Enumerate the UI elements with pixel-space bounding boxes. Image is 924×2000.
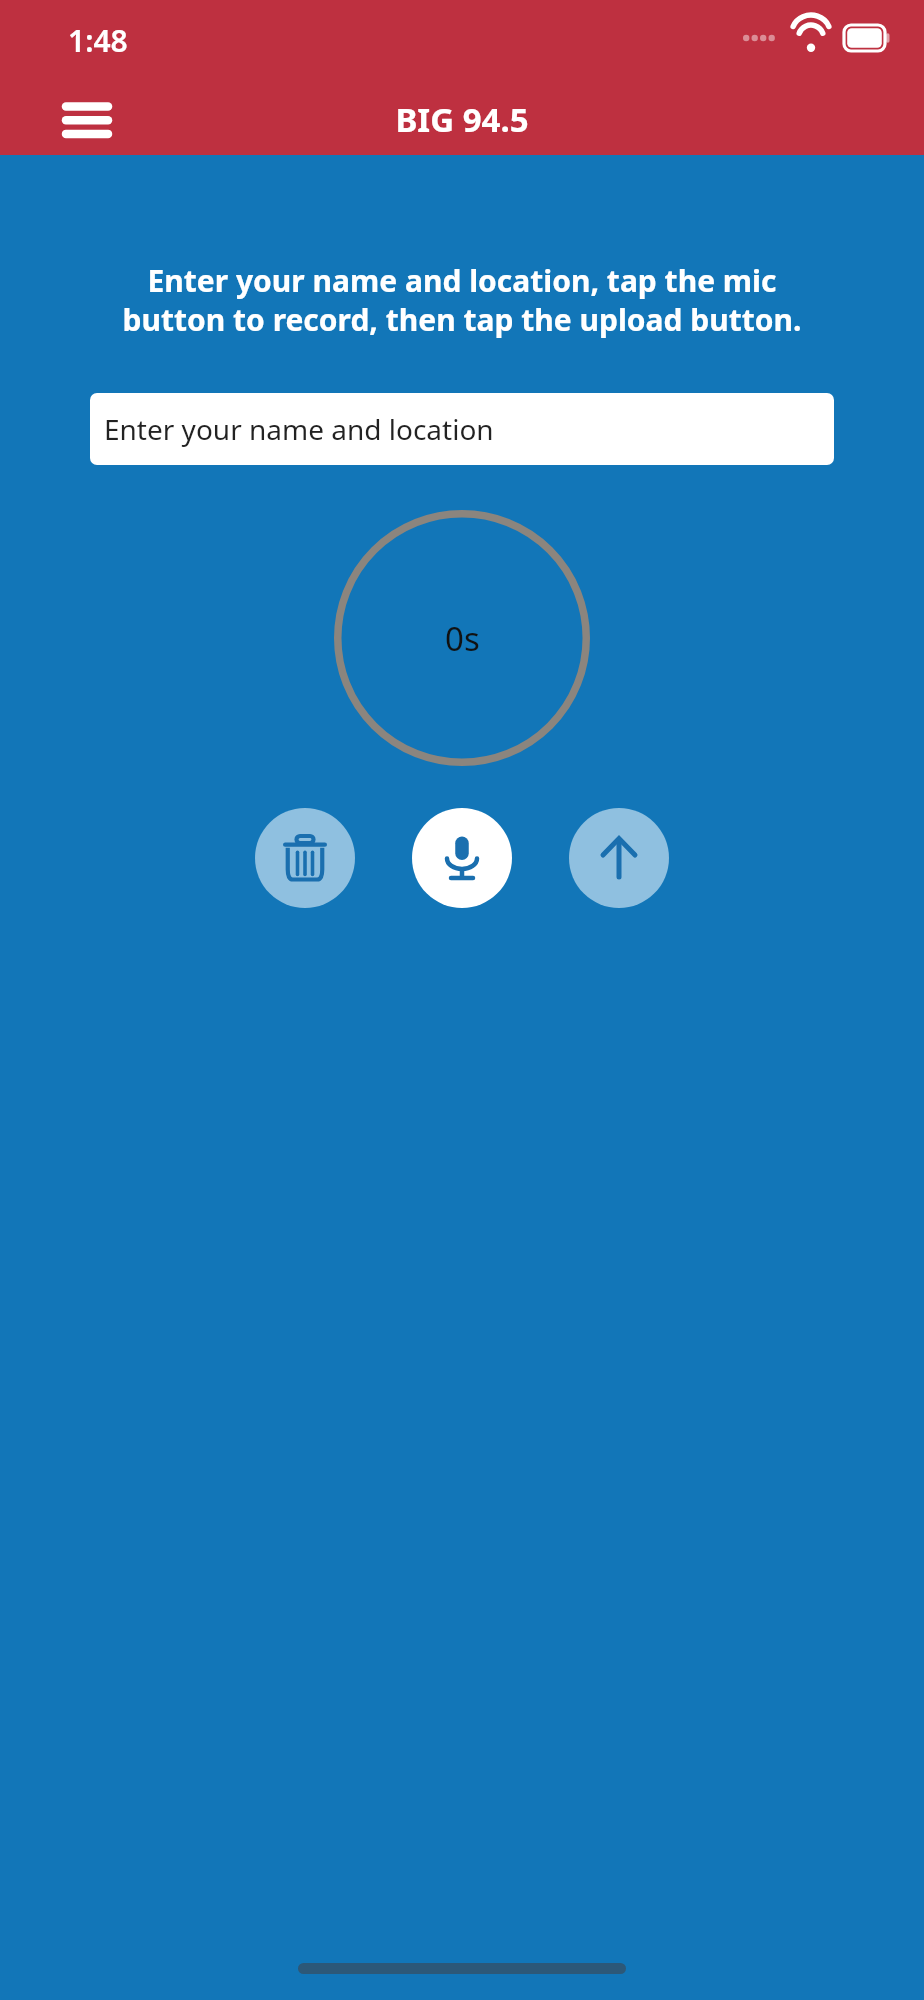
staticText: 0s (445, 616, 480, 661)
staticText: Enter your name and location, tap the mi… (100, 260, 824, 339)
button[interactable]: Open navigation menu (44, 88, 116, 150)
staticText: BIG 94.5 (395, 97, 529, 142)
button[interactable]: Upload recording (569, 808, 669, 908)
staticText: Enter your name and location (104, 410, 494, 448)
button[interactable]: Record with microphone (412, 808, 512, 908)
button[interactable]: Delete recording (255, 808, 355, 908)
staticText: 1:48 (68, 20, 128, 61)
button[interactable]: Enter your name and location (90, 393, 834, 465)
